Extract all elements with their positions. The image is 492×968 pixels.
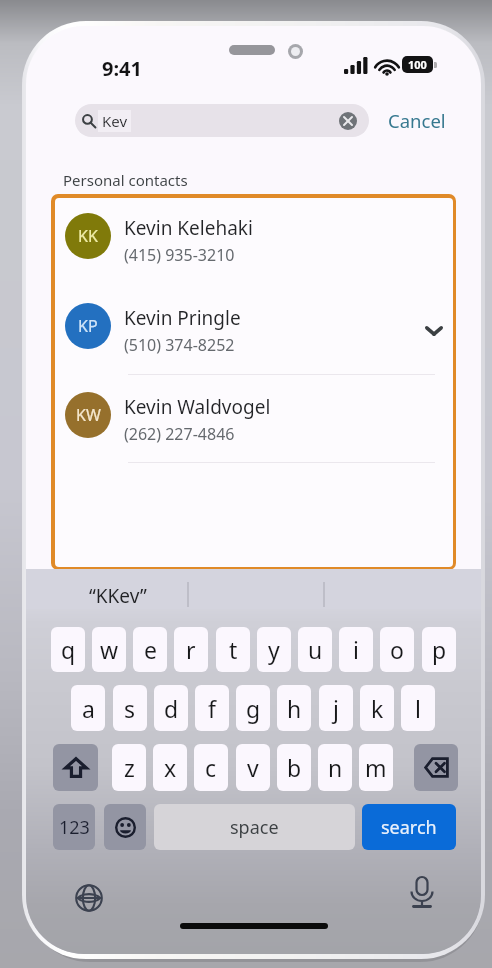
button[interactable]: x <box>153 744 187 791</box>
button[interactable]: Voice input <box>403 873 441 911</box>
staticText: KK <box>78 225 98 247</box>
button[interactable]: KP <box>55 288 453 376</box>
staticText: Kevin Waldvogel <box>124 394 271 420</box>
button[interactable]: r <box>174 627 208 672</box>
staticText: i <box>353 634 359 665</box>
button[interactable]: t <box>216 627 250 672</box>
button[interactable]: m <box>359 744 393 791</box>
button[interactable]: q <box>51 627 85 672</box>
button[interactable]: n <box>318 744 352 791</box>
staticText: d <box>164 693 179 724</box>
staticText: p <box>432 634 447 665</box>
button[interactable]: v <box>236 744 270 791</box>
button[interactable]: Expand contact <box>417 314 451 348</box>
button[interactable]: search <box>362 804 456 850</box>
staticText: Kev <box>102 111 128 131</box>
button[interactable]: f <box>195 685 229 731</box>
staticText: f <box>208 693 216 724</box>
button[interactable]: h <box>277 685 311 731</box>
staticText: y <box>268 634 280 665</box>
staticText: c <box>205 752 217 783</box>
staticText: b <box>287 752 302 783</box>
staticText: “KKev” <box>89 583 147 609</box>
staticText: o <box>390 634 404 665</box>
staticText: n <box>328 752 343 783</box>
button[interactable]: u <box>298 627 332 672</box>
staticText: w <box>100 634 119 665</box>
button[interactable]: KK <box>55 198 453 286</box>
button[interactable]: 123 <box>53 804 95 850</box>
staticText: KW <box>76 404 101 426</box>
staticText: x <box>164 752 177 783</box>
staticText: u <box>308 634 323 665</box>
button[interactable]: p <box>422 627 456 672</box>
button[interactable]: Shift <box>53 744 98 791</box>
staticText: (510) 374-8252 <box>124 334 235 356</box>
staticText: r <box>186 634 196 665</box>
button[interactable]: Change keyboard language <box>71 880 107 916</box>
staticText: m <box>365 752 387 783</box>
staticText: j <box>333 693 339 724</box>
staticText: (415) 935-3210 <box>124 244 235 266</box>
button[interactable]: w <box>92 627 126 672</box>
staticText: Personal contacts <box>63 170 188 190</box>
staticText: s <box>124 693 136 724</box>
button[interactable]: o <box>380 627 414 672</box>
staticText: Cancel <box>388 108 446 133</box>
staticText: search <box>381 815 437 840</box>
staticText: (262) 227-4846 <box>124 423 235 445</box>
button[interactable]: Backspace <box>414 744 458 791</box>
staticText: 9:41 <box>102 55 142 82</box>
staticText: h <box>287 693 302 724</box>
staticText: Kevin Pringle <box>124 305 241 331</box>
staticText: e <box>144 634 157 665</box>
button[interactable]: Clear search <box>339 112 357 130</box>
button[interactable]: d <box>154 685 188 731</box>
staticText: k <box>371 693 384 724</box>
button[interactable]: z <box>112 744 146 791</box>
staticText: a <box>82 693 95 724</box>
button[interactable]: s <box>113 685 147 731</box>
button[interactable]: space <box>154 804 355 850</box>
staticText: v <box>247 752 259 783</box>
staticText: g <box>246 693 261 724</box>
button[interactable]: e <box>133 627 167 672</box>
staticText: q <box>61 634 76 665</box>
button[interactable]: l <box>401 685 435 731</box>
button[interactable]: j <box>319 685 353 731</box>
staticText: z <box>124 752 135 783</box>
button[interactable]: i <box>339 627 373 672</box>
button[interactable]: Emoji <box>104 804 146 850</box>
staticText: l <box>415 693 421 724</box>
staticText: space <box>230 815 279 840</box>
button[interactable]: Kev <box>75 104 369 137</box>
staticText: KP <box>78 315 98 337</box>
staticText: 100 <box>408 57 427 72</box>
button[interactable]: KW <box>55 377 453 465</box>
staticText: t <box>229 634 238 665</box>
button[interactable]: Cancel <box>388 104 450 137</box>
button[interactable]: b <box>277 744 311 791</box>
button[interactable]: k <box>360 685 394 731</box>
button[interactable]: c <box>194 744 228 791</box>
button[interactable]: a <box>71 685 105 731</box>
staticText: 123 <box>59 815 90 840</box>
staticText: Kevin Kelehaki <box>124 215 253 241</box>
button[interactable]: y <box>257 627 291 672</box>
button[interactable]: g <box>236 685 270 731</box>
